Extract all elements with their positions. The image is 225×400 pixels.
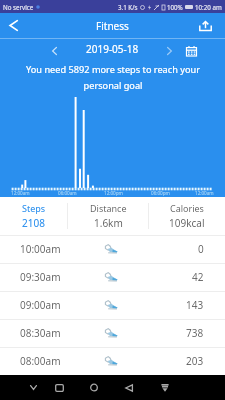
- button[interactable]: Distance: [68, 197, 148, 235]
- staticText: 09:30am: [20, 270, 61, 284]
- staticText: 10:20 am: [195, 3, 222, 11]
- button[interactable]: Download: [155, 375, 175, 400]
- staticText: 12:00am: [195, 190, 214, 196]
- staticText: 08:30am: [20, 326, 61, 340]
- button[interactable]: 10:00am: [0, 235, 225, 263]
- button[interactable]: Hide keyboard: [24, 375, 43, 400]
- staticText: 06:00am: [58, 190, 77, 196]
- button[interactable]: Steps: [0, 197, 67, 235]
- staticText: 1.6km: [94, 216, 123, 230]
- button[interactable]: Back: [0, 13, 28, 38]
- staticText: 109kcal: [169, 216, 205, 230]
- button[interactable]: Calendar: [182, 38, 202, 60]
- button[interactable]: Calories: [149, 197, 225, 235]
- staticText: Calories: [170, 202, 204, 214]
- button[interactable]: 09:00am: [0, 291, 225, 319]
- staticText: 0: [198, 242, 204, 256]
- staticText: 10:00am: [20, 242, 61, 256]
- staticText: 06:00pm: [151, 190, 170, 196]
- button[interactable]: 09:30am: [0, 263, 225, 291]
- staticText: 2108: [22, 216, 45, 230]
- staticText: 203: [186, 354, 204, 368]
- button[interactable]: Share: [193, 13, 225, 38]
- button[interactable]: Previous day: [47, 38, 65, 60]
- staticText: 42: [192, 270, 204, 284]
- button[interactable]: Back: [119, 375, 139, 400]
- staticText: 3.1 K/s: [118, 3, 138, 11]
- staticText: 100%: [167, 3, 183, 11]
- staticText: You need 5892 more steps to reach your p…: [26, 63, 200, 91]
- staticText: 143: [186, 298, 204, 312]
- button[interactable]: 08:00am: [0, 347, 225, 375]
- button[interactable]: Home: [84, 375, 104, 400]
- staticText: 2019-05-18: [86, 42, 139, 56]
- button[interactable]: 08:30am: [0, 319, 225, 347]
- button[interactable]: Recents: [49, 375, 70, 400]
- staticText: Steps: [22, 202, 46, 214]
- staticText: 08:00am: [20, 354, 61, 368]
- staticText: Distance: [90, 202, 127, 214]
- staticText: 12:00am: [11, 190, 30, 196]
- staticText: No service: [3, 3, 34, 11]
- staticText: 738: [186, 326, 204, 340]
- staticText: 09:00am: [20, 298, 61, 312]
- staticText: Fitness: [96, 19, 129, 33]
- button[interactable]: Next day: [162, 38, 180, 60]
- staticText: 12:00pm: [104, 190, 123, 196]
